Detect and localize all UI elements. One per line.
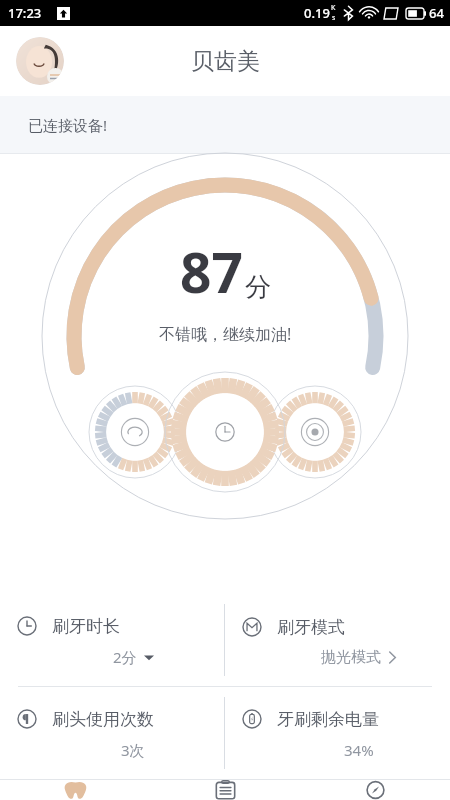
staticText: 刷牙时长	[52, 616, 120, 637]
staticText: 87	[180, 234, 243, 309]
staticText: 贝齿美	[191, 47, 260, 76]
staticText: 2分	[113, 647, 137, 667]
button[interactable]: 发现	[300, 780, 450, 800]
staticText: 牙刷剩余电量	[277, 709, 379, 730]
staticText: 已连接设备!	[28, 115, 108, 135]
button[interactable]: 记录	[150, 780, 300, 800]
staticText: 刷头使用次数	[52, 709, 154, 730]
staticText: 抛光模式	[321, 648, 381, 667]
staticText: 刷牙模式	[277, 617, 345, 638]
button[interactable]: 牙刷剩余电量	[225, 687, 450, 779]
button[interactable]: Profile	[16, 37, 64, 85]
staticText: 17:23	[8, 4, 42, 22]
staticText: s	[332, 13, 336, 23]
button[interactable]: 刷牙时长	[0, 594, 224, 686]
staticText: 64	[429, 4, 444, 22]
staticText: 34%	[344, 740, 374, 760]
button[interactable]: 刷头使用次数	[0, 687, 224, 779]
button[interactable]: 刷牙模式	[225, 594, 450, 686]
staticText: 3次	[121, 740, 145, 760]
staticText: K	[331, 3, 336, 13]
staticText: 分	[245, 271, 271, 304]
button[interactable]: 首页	[0, 780, 150, 800]
staticText: 0.19	[304, 4, 330, 22]
staticText: 不错哦，继续加油!	[159, 323, 292, 345]
